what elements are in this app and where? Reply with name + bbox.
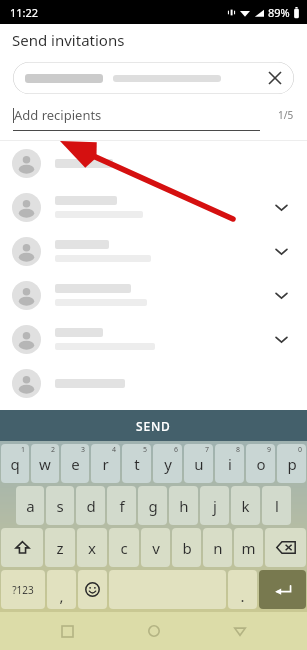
staticText: 3	[81, 445, 86, 455]
button[interactable]: Remove recipient	[13, 62, 294, 94]
button[interactable]: t	[122, 444, 151, 483]
button[interactable]: Remove recipient	[264, 67, 286, 89]
button[interactable]: Emoji	[78, 570, 107, 609]
staticText: r	[102, 454, 109, 474]
button[interactable]: n	[203, 528, 232, 567]
button[interactable]: Expand	[0, 273, 307, 317]
button[interactable]: .	[228, 570, 257, 609]
button[interactable]: f	[107, 486, 136, 525]
staticText: o	[256, 454, 266, 474]
staticText: 2	[51, 445, 56, 455]
button[interactable]: m	[234, 528, 263, 567]
staticText: Send invitations	[12, 30, 125, 50]
staticText: 89%	[268, 5, 290, 20]
staticText: 1/5	[278, 108, 294, 122]
button[interactable]: y	[153, 444, 182, 483]
staticText: t	[134, 454, 140, 474]
button[interactable]: i	[215, 444, 244, 483]
staticText: n	[213, 538, 223, 558]
staticText: j	[213, 496, 217, 516]
button[interactable]: Back	[220, 612, 260, 650]
button[interactable]: Enter	[259, 570, 306, 609]
staticText: s	[56, 496, 64, 516]
staticText: b	[182, 538, 192, 558]
button[interactable]: Backspace	[265, 528, 306, 567]
button[interactable]: Home	[134, 612, 174, 650]
staticText: .	[240, 586, 245, 606]
staticText: h	[179, 496, 189, 516]
staticText: e	[71, 454, 80, 474]
button[interactable]: Expand	[267, 281, 295, 309]
button[interactable]: v	[141, 528, 170, 567]
staticText: p	[287, 454, 297, 474]
staticText: a	[26, 496, 35, 516]
button[interactable]	[0, 141, 307, 185]
staticText: 5	[143, 445, 148, 455]
button[interactable]: Expand	[0, 229, 307, 273]
staticText: f	[119, 496, 125, 516]
button[interactable]: o	[246, 444, 275, 483]
button[interactable]: s	[46, 486, 74, 525]
button[interactable]: Expand	[0, 317, 307, 361]
staticText: l	[275, 496, 279, 516]
staticText: m	[241, 538, 256, 558]
staticText: x	[88, 538, 96, 558]
staticText: i	[228, 454, 232, 474]
staticText: w	[39, 454, 51, 474]
button[interactable]: j	[200, 486, 229, 525]
button[interactable]: u	[184, 444, 213, 483]
staticText: 11:22	[10, 5, 39, 20]
staticText: 0	[298, 445, 303, 455]
staticText: 9	[267, 445, 272, 455]
button[interactable]: x	[77, 528, 107, 567]
staticText: z	[56, 538, 64, 558]
button[interactable]: Expand	[0, 185, 307, 229]
staticText: 4	[112, 445, 117, 455]
staticText: 6	[174, 445, 179, 455]
button[interactable]: q	[1, 444, 29, 483]
staticText: ?123	[12, 583, 34, 597]
button[interactable]: Expand	[267, 193, 295, 221]
staticText: SEND	[136, 418, 171, 434]
button[interactable]: z	[45, 528, 75, 567]
button[interactable]: c	[109, 528, 139, 567]
staticText: v	[152, 538, 160, 558]
staticText: ,	[59, 586, 64, 606]
button[interactable]: Expand	[267, 237, 295, 265]
button[interactable]: Recents	[47, 612, 87, 650]
button[interactable]: ,	[47, 570, 76, 609]
button[interactable]: p	[277, 444, 306, 483]
staticText: k	[241, 496, 250, 516]
button[interactable]	[0, 361, 307, 405]
button[interactable]: Shift	[1, 528, 43, 567]
staticText: c	[120, 538, 128, 558]
button[interactable]: k	[231, 486, 260, 525]
button[interactable]: e	[61, 444, 89, 483]
button[interactable]: h	[169, 486, 198, 525]
staticText: d	[86, 496, 96, 516]
staticText: 7	[205, 445, 210, 455]
button[interactable]: Expand	[267, 325, 295, 353]
staticText: y	[164, 454, 172, 474]
button[interactable]: w	[31, 444, 59, 483]
button[interactable]: l	[262, 486, 291, 525]
button[interactable]: d	[76, 486, 105, 525]
staticText: 1	[21, 445, 26, 455]
staticText: g	[148, 496, 158, 516]
button[interactable]: a	[16, 486, 44, 525]
staticText: u	[194, 454, 204, 474]
button[interactable]: b	[172, 528, 201, 567]
button[interactable]: g	[138, 486, 167, 525]
staticText: Add recipients	[14, 106, 102, 124]
button[interactable]: r	[91, 444, 120, 483]
button[interactable]: SEND	[0, 410, 307, 441]
staticText: q	[10, 454, 20, 474]
staticText: 8	[236, 445, 241, 455]
button[interactable]: ?123	[1, 570, 45, 609]
